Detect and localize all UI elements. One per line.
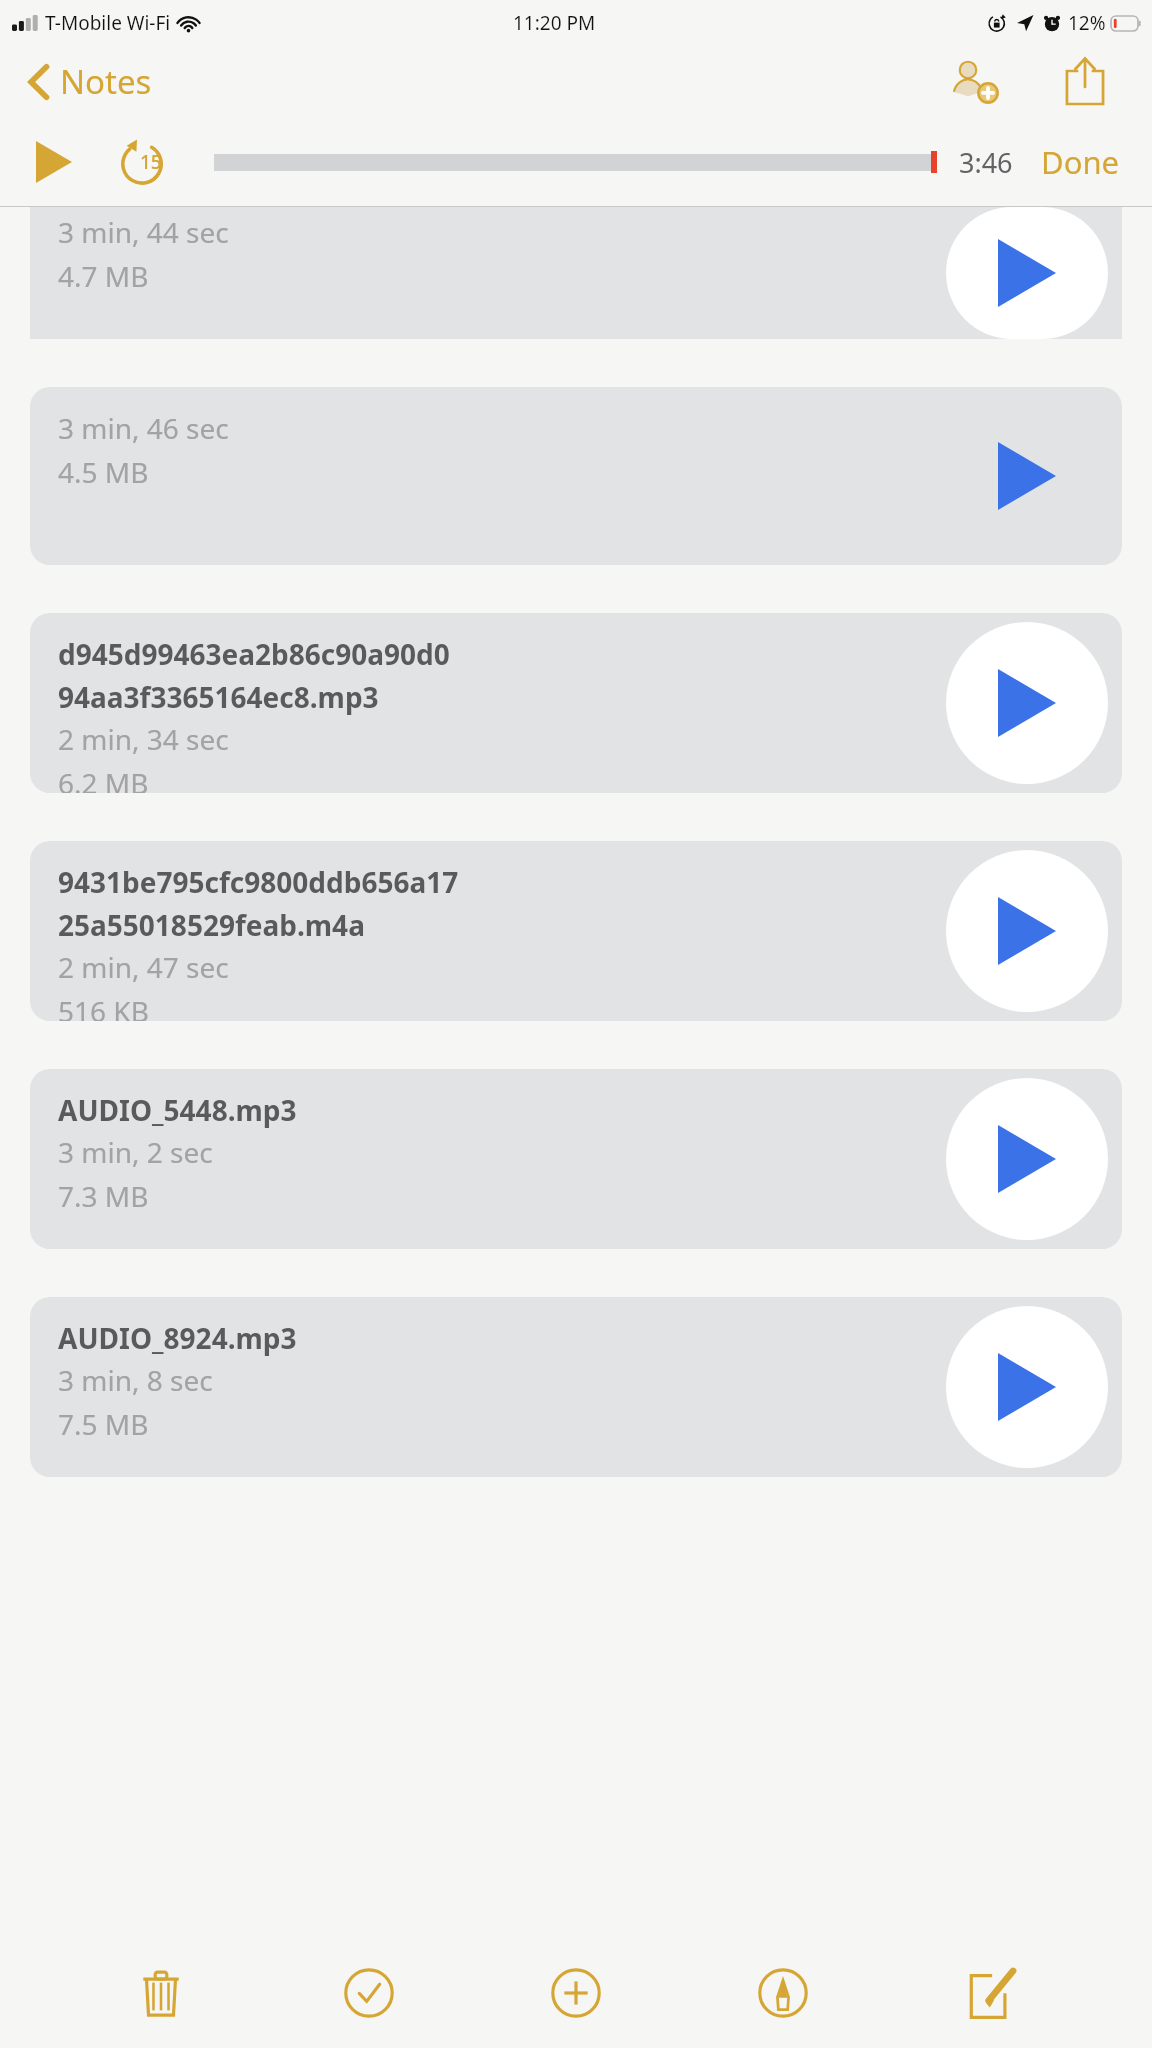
button[interactable]: Markup	[737, 1947, 829, 2039]
staticText: 7.3 MB	[58, 1177, 149, 1215]
button[interactable]	[214, 151, 937, 173]
staticText: 2 min, 47 sec	[58, 948, 229, 986]
staticText: AUDIO_5448.mp3	[58, 1091, 297, 1129]
button[interactable]: Checklist	[323, 1947, 415, 2039]
staticText: Done	[1041, 141, 1120, 183]
button[interactable]: AUDIO_5448.mp3	[30, 1069, 1122, 1249]
staticText: 2 min, 34 sec	[58, 720, 229, 758]
button[interactable]: Play audio	[946, 1078, 1108, 1240]
staticText: 7.5 MB	[58, 1405, 149, 1443]
staticText: 4.7 MB	[58, 257, 149, 295]
button[interactable]: 3 min, 44 sec	[30, 207, 1122, 339]
staticText: 3 min, 2 sec	[58, 1133, 213, 1171]
button[interactable]: Skip back 15 seconds	[114, 134, 170, 190]
staticText: T-Mobile Wi-Fi	[45, 10, 171, 36]
button[interactable]: Compose	[945, 1947, 1037, 2039]
button[interactable]: 3 min, 46 sec	[30, 387, 1122, 565]
staticText: 4.5 MB	[58, 453, 149, 491]
button[interactable]: Play audio	[946, 850, 1108, 1012]
staticText: 3 min, 46 sec	[58, 409, 229, 447]
button[interactable]: 9431be795cfc9800ddb656a17 25a55018529fea…	[30, 841, 1122, 1021]
staticText: 11:20 PM	[513, 10, 596, 36]
button[interactable]: Play audio	[946, 395, 1108, 557]
staticText: 516 KB	[58, 992, 149, 1021]
staticText: 3:46	[959, 144, 1013, 181]
button[interactable]: Play audio	[946, 1306, 1108, 1468]
staticText: d945d99463ea2b86c90a90d0 94aa3f3365164ec…	[58, 635, 450, 716]
staticText: 12%	[1068, 10, 1106, 36]
staticText: 6.2 MB	[58, 764, 149, 793]
button[interactable]: Notes	[0, 53, 166, 110]
button[interactable]: AUDIO_8924.mp3	[30, 1297, 1122, 1477]
staticText: Notes	[60, 59, 152, 104]
button[interactable]: Play	[30, 135, 78, 189]
staticText: 3 min, 8 sec	[58, 1361, 213, 1399]
button[interactable]: Add	[530, 1947, 622, 2039]
button[interactable]: Done	[1035, 135, 1126, 189]
button[interactable]: Share	[1054, 46, 1116, 116]
staticText: 3 min, 44 sec	[58, 213, 229, 251]
staticText: 9431be795cfc9800ddb656a17 25a55018529fea…	[58, 863, 459, 944]
button[interactable]: Play audio	[946, 207, 1108, 339]
button[interactable]: Play audio	[946, 622, 1108, 784]
button[interactable]: d945d99463ea2b86c90a90d0 94aa3f3365164ec…	[30, 613, 1122, 793]
staticText: AUDIO_8924.mp3	[58, 1319, 297, 1357]
button[interactable]: Add people	[938, 48, 1008, 114]
button[interactable]: Delete	[115, 1947, 207, 2039]
staticText: 15	[140, 149, 162, 175]
